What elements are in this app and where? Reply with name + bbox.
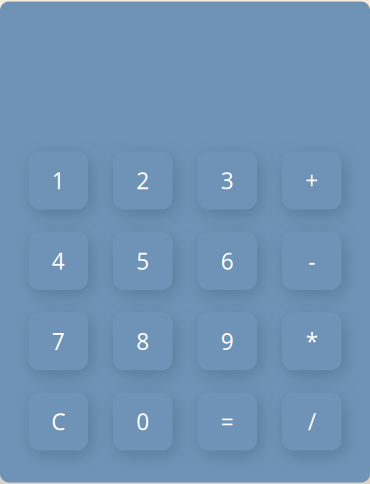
staticText: 5	[136, 246, 149, 276]
button[interactable]: Subtract	[282, 232, 341, 290]
staticText: 8	[136, 326, 149, 356]
button[interactable]: Add	[282, 151, 341, 209]
staticText: 7	[52, 326, 65, 356]
staticText: C	[51, 406, 65, 436]
staticText: 6	[221, 246, 234, 276]
button[interactable]: Divide	[282, 392, 341, 450]
button[interactable]: 7	[28, 312, 88, 370]
staticText: 1	[52, 165, 65, 196]
button[interactable]: 6	[197, 232, 257, 290]
staticText: =	[221, 406, 234, 436]
button[interactable]: 2	[113, 151, 172, 209]
staticText: 4	[52, 246, 65, 276]
button[interactable]: 3	[197, 151, 257, 209]
button[interactable]: 5	[113, 232, 172, 290]
button[interactable]: 8	[113, 312, 172, 370]
staticText: 9	[221, 326, 234, 356]
staticText: 0	[136, 406, 149, 436]
button[interactable]: 1	[28, 151, 88, 209]
staticText: 2	[136, 165, 149, 196]
staticText: +	[305, 165, 318, 196]
staticText: *	[306, 326, 318, 356]
button[interactable]: Multiply	[282, 312, 341, 370]
staticText: /	[308, 406, 316, 436]
staticText: -	[308, 246, 315, 276]
button[interactable]: 0	[113, 392, 172, 450]
button[interactable]: 4	[28, 232, 88, 290]
button[interactable]: Equals	[197, 392, 257, 450]
button[interactable]: 9	[197, 312, 257, 370]
button[interactable]: Clear	[28, 392, 88, 450]
staticText: 3	[221, 165, 234, 196]
